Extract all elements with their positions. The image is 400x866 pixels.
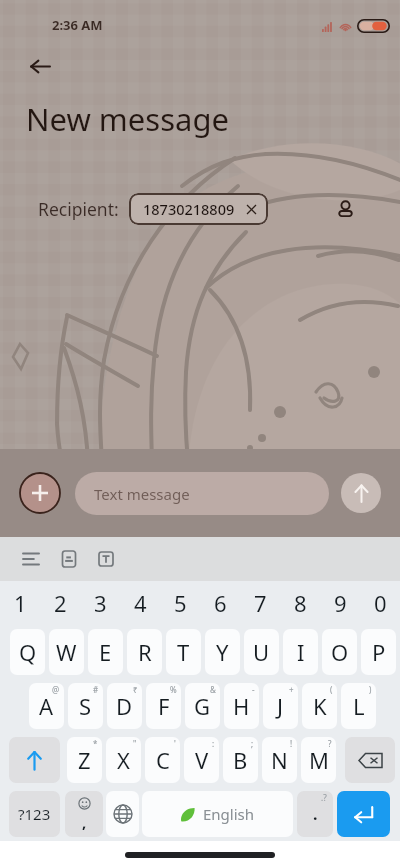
button[interactable]: ( (302, 683, 337, 729)
staticText: 1 (14, 588, 27, 618)
button[interactable]: Back (22, 48, 58, 84)
staticText: O (331, 637, 349, 667)
button[interactable]: % (146, 683, 181, 729)
button[interactable]: 8 (280, 581, 320, 625)
staticText: 18730218809 (143, 199, 235, 219)
staticText: N (271, 745, 288, 775)
staticText: * (93, 738, 98, 749)
button[interactable]: & (185, 683, 220, 729)
staticText: ' (174, 738, 176, 749)
staticText: % (170, 684, 177, 695)
staticText: ₹ (133, 684, 138, 695)
button[interactable]: @ (29, 683, 64, 729)
button[interactable]: Q (10, 629, 45, 675)
button[interactable]: P (361, 629, 396, 675)
staticText: C (156, 745, 170, 775)
staticText: 0 (374, 588, 387, 618)
staticText: F (158, 691, 170, 721)
staticText: 4 (134, 588, 147, 618)
staticText: 2:36 AM (52, 16, 103, 34)
staticText: ! (290, 738, 293, 749)
button[interactable]: ? (301, 737, 336, 783)
staticText: 2 (54, 588, 67, 618)
button[interactable]: ) (341, 683, 376, 729)
button[interactable]: Menu (16, 544, 46, 574)
button[interactable]: I (283, 629, 318, 675)
staticText: H (233, 691, 250, 721)
button[interactable]: Change keyboard language (106, 791, 139, 837)
staticText: J (277, 691, 284, 721)
staticText: A (39, 691, 54, 721)
button[interactable]: W (49, 629, 84, 675)
button[interactable]: R (127, 629, 162, 675)
button[interactable]: O (322, 629, 357, 675)
staticText: X (117, 745, 130, 775)
staticText: New message (26, 98, 229, 140)
staticText: + (289, 684, 294, 695)
button[interactable]: Backspace (345, 737, 395, 783)
staticText: G (194, 691, 211, 721)
button[interactable]: Send (341, 473, 381, 513)
staticText: 8 (294, 588, 307, 618)
button[interactable]: 3 (80, 581, 120, 625)
staticText: T (177, 637, 190, 667)
button[interactable]: Shift (9, 737, 60, 783)
staticText: .? (321, 792, 327, 803)
staticText: R (138, 637, 152, 667)
staticText: ?123 (18, 804, 51, 824)
staticText: , (82, 812, 87, 832)
staticText: : (212, 738, 215, 749)
button[interactable]: 1 (0, 581, 40, 625)
button[interactable]: Emoji (65, 791, 103, 837)
staticText: Text message (94, 484, 190, 504)
button[interactable]: ! (262, 737, 297, 783)
button[interactable]: Text message (75, 472, 329, 515)
button[interactable]: T (166, 629, 201, 675)
staticText: L (353, 691, 365, 721)
button[interactable]: U (244, 629, 279, 675)
staticText: Recipient: (38, 197, 119, 221)
staticText: 6 (214, 588, 227, 618)
button[interactable]: # (68, 683, 103, 729)
button[interactable]: .? (297, 791, 333, 837)
staticText: S (79, 691, 92, 721)
button[interactable]: 5 (160, 581, 200, 625)
button[interactable]: ' (145, 737, 180, 783)
button[interactable]: 18730218809 (129, 193, 268, 225)
button[interactable]: Text formatting (91, 544, 121, 574)
staticText: P (372, 637, 386, 667)
staticText: # (93, 684, 99, 695)
button[interactable]: + (263, 683, 298, 729)
staticText: ; (251, 738, 254, 749)
button[interactable]: Add attachment (19, 472, 61, 514)
button[interactable]: 2 (40, 581, 80, 625)
button[interactable]: * (67, 737, 102, 783)
staticText: 9 (334, 588, 347, 618)
button[interactable]: 9 (320, 581, 360, 625)
staticText: I (297, 637, 305, 667)
staticText: & (210, 684, 216, 695)
staticText: D (116, 691, 133, 721)
staticText: Q (19, 637, 37, 667)
button[interactable]: E (88, 629, 123, 675)
staticText: ) (369, 684, 372, 695)
button[interactable]: ?123 (9, 791, 60, 837)
button[interactable]: Enter (337, 791, 390, 837)
button[interactable]: 6 (200, 581, 240, 625)
button[interactable]: English (142, 791, 293, 837)
button[interactable]: 4 (120, 581, 160, 625)
staticText: 3 (94, 588, 107, 618)
button[interactable]: Choose contact (328, 192, 362, 226)
button[interactable]: Y (205, 629, 240, 675)
button[interactable]: - (224, 683, 259, 729)
button[interactable]: 0 (360, 581, 400, 625)
button[interactable]: : (184, 737, 219, 783)
staticText: B (233, 745, 248, 775)
button[interactable]: ; (223, 737, 258, 783)
staticText: ? (328, 738, 332, 749)
button[interactable]: " (106, 737, 141, 783)
button[interactable]: 7 (240, 581, 280, 625)
staticText: English (203, 804, 255, 824)
button[interactable]: ₹ (107, 683, 142, 729)
button[interactable]: Clipboard (54, 544, 84, 574)
